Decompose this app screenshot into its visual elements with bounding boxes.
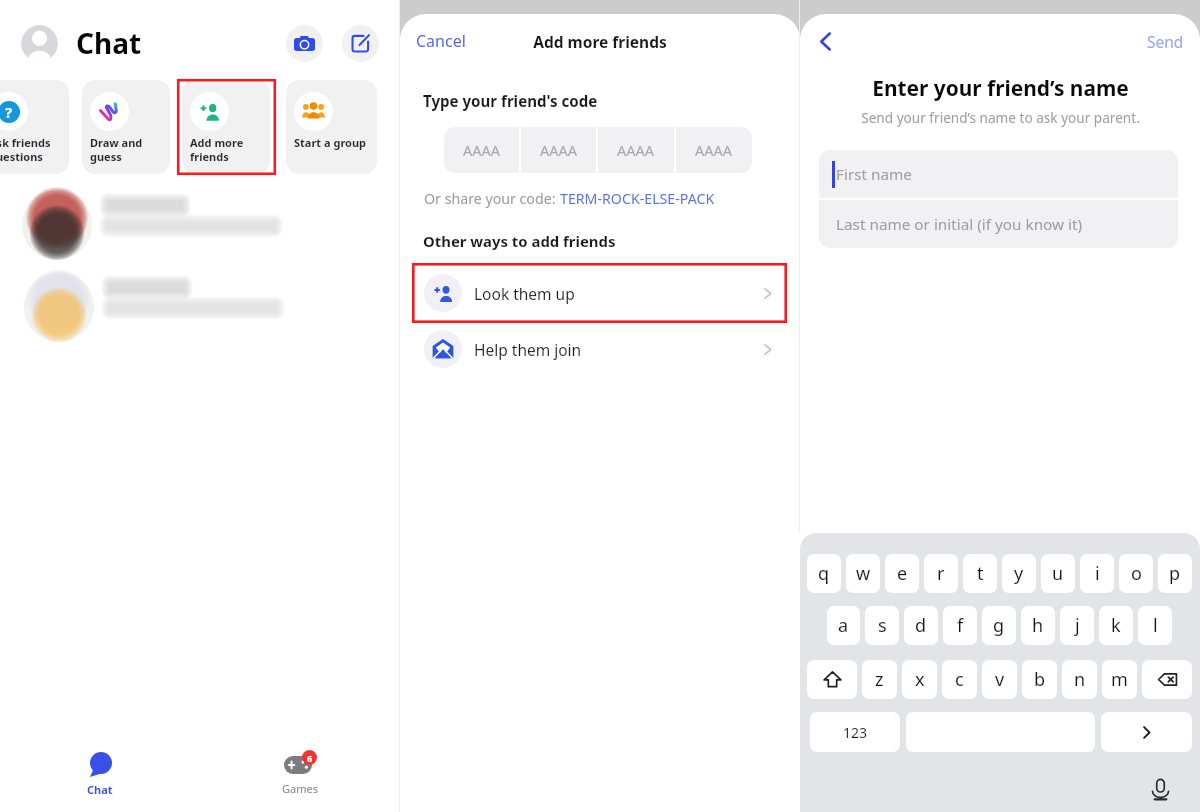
staticText: s — [878, 613, 887, 638]
staticText: h — [1032, 613, 1044, 638]
button[interactable]: e — [885, 554, 919, 593]
staticText: AAAA — [463, 140, 501, 160]
staticText: First name — [836, 164, 912, 185]
button[interactable]: Send — [1147, 14, 1184, 54]
staticText: z — [875, 667, 884, 692]
button[interactable]: New message — [342, 25, 379, 62]
staticText: p — [1169, 561, 1181, 586]
button[interactable] — [22, 190, 372, 262]
button[interactable]: Camera — [286, 25, 323, 62]
staticText: q — [818, 561, 830, 586]
staticText: Enter your friend’s name — [872, 74, 1129, 102]
staticText: Ask friends questions — [0, 135, 51, 165]
button[interactable]: Back — [810, 26, 840, 56]
staticText: l — [1153, 613, 1158, 638]
button[interactable]: b — [1022, 660, 1057, 699]
staticText: Or share your code: — [424, 189, 560, 208]
button[interactable]: f — [943, 606, 977, 645]
button[interactable]: Chat — [60, 730, 140, 812]
button[interactable]: TERM-ROCK-ELSE-PACK — [560, 189, 715, 208]
button[interactable]: y — [1002, 554, 1036, 593]
button[interactable]: AAAA — [521, 127, 596, 173]
button[interactable]: k — [1099, 606, 1133, 645]
button[interactable]: n — [1062, 660, 1097, 699]
staticText: Add more friends — [190, 135, 244, 165]
button[interactable]: Shift — [807, 660, 857, 699]
button[interactable]: g — [982, 606, 1016, 645]
staticText: f — [957, 613, 964, 638]
button[interactable]: q — [807, 554, 841, 593]
staticText: 6 — [307, 752, 313, 764]
button[interactable]: Last name or initial (if you know it) — [819, 200, 1178, 248]
button[interactable]: l — [1138, 606, 1172, 645]
button[interactable]: AAAA — [444, 127, 519, 173]
staticText: i — [1095, 561, 1100, 586]
button[interactable]: Voice input — [1146, 775, 1174, 803]
button[interactable]: o — [1119, 554, 1153, 593]
button[interactable]: h — [1021, 606, 1055, 645]
staticText: j — [1075, 613, 1080, 638]
staticText: Other ways to add friends — [423, 231, 616, 251]
staticText: Look them up — [474, 283, 760, 304]
button[interactable]: j — [1060, 606, 1094, 645]
button[interactable]: First name — [819, 150, 1178, 198]
button[interactable]: d — [904, 606, 938, 645]
staticText: u — [1052, 561, 1064, 586]
button[interactable]: x — [902, 660, 937, 699]
button[interactable]: Next — [1101, 712, 1192, 752]
staticText: x — [915, 667, 925, 692]
staticText: v — [995, 667, 1005, 692]
button[interactable]: Look them up — [400, 265, 800, 321]
staticText: Draw and guess — [90, 135, 143, 165]
staticText: Last name or initial (if you know it) — [836, 214, 1083, 235]
staticText: m — [1111, 667, 1128, 692]
staticText: Add more friends — [533, 31, 667, 52]
staticText: e — [897, 561, 908, 586]
button[interactable]: u — [1041, 554, 1075, 593]
button[interactable]: s — [865, 606, 899, 645]
button[interactable]: Profile — [21, 25, 58, 62]
staticText: AAAA — [617, 140, 655, 160]
staticText: t — [977, 561, 984, 586]
staticText: c — [955, 667, 964, 692]
button[interactable]: m — [1102, 660, 1137, 699]
button[interactable]: z — [862, 660, 897, 699]
staticText: o — [1131, 561, 1142, 586]
button[interactable]: i — [1080, 554, 1114, 593]
button[interactable]: Draw and guess — [82, 80, 170, 174]
staticText: ? — [5, 102, 13, 122]
button[interactable]: w — [846, 554, 880, 593]
staticText: k — [1111, 613, 1121, 638]
staticText: d — [915, 613, 927, 638]
staticText: n — [1074, 667, 1086, 692]
staticText: Type your friend's code — [423, 91, 598, 112]
button[interactable] — [24, 272, 374, 344]
button[interactable]: a — [827, 606, 860, 645]
staticText: Chat — [76, 24, 142, 62]
button[interactable]: r — [924, 554, 958, 593]
staticText: g — [993, 613, 1005, 638]
button[interactable]: ? — [0, 80, 69, 174]
button[interactable]: AAAA — [598, 127, 674, 173]
button[interactable]: AAAA — [676, 127, 752, 173]
button[interactable]: t — [963, 554, 997, 593]
staticText: Start a group — [294, 135, 367, 150]
button[interactable]: Help them join — [400, 321, 800, 377]
button[interactable]: 123 — [810, 712, 900, 752]
button[interactable]: v — [982, 660, 1017, 699]
button[interactable]: Start a group — [286, 80, 377, 174]
staticText: AAAA — [695, 140, 733, 160]
button[interactable]: 6 — [260, 730, 340, 812]
staticText: Send — [1147, 31, 1184, 52]
button[interactable]: Backspace — [1142, 660, 1192, 699]
button[interactable]: c — [942, 660, 977, 699]
button[interactable]: Add more friends — [182, 80, 270, 174]
staticText: y — [1014, 561, 1024, 586]
staticText: r — [937, 561, 945, 586]
staticText: Games — [282, 781, 318, 796]
staticText: Send your friend’s name to ask your pare… — [861, 108, 1140, 127]
button[interactable]: Cancel — [416, 14, 466, 54]
button[interactable]: p — [1158, 554, 1192, 593]
staticText: Cancel — [416, 30, 466, 52]
